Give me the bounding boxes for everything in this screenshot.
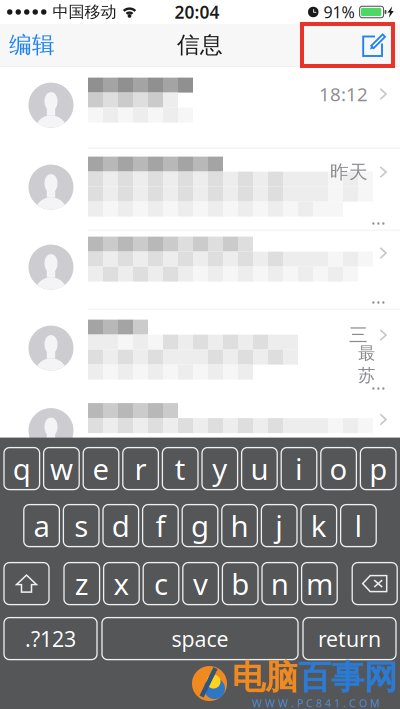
staticText: 18:12 xyxy=(319,82,368,106)
button[interactable]: m xyxy=(302,563,337,605)
staticText: r xyxy=(135,449,147,488)
staticText: W W W . P C 8 4 1 . C O M xyxy=(252,696,380,709)
button[interactable]: k xyxy=(301,505,337,547)
button[interactable]: x xyxy=(104,563,139,605)
staticText: space xyxy=(171,624,228,653)
button[interactable] xyxy=(0,231,400,310)
staticText: 中国移动 xyxy=(52,2,116,22)
staticText: s xyxy=(74,506,88,545)
button[interactable]: New Message xyxy=(350,24,400,66)
button[interactable]: o xyxy=(321,448,356,490)
button[interactable]: 编辑 xyxy=(0,24,65,66)
button[interactable]: 昨天 xyxy=(0,149,400,231)
staticText: a xyxy=(34,506,50,545)
button[interactable]: Delete xyxy=(352,563,397,605)
staticText: h xyxy=(231,506,249,545)
button[interactable]: return xyxy=(303,618,396,660)
button[interactable]: d xyxy=(103,505,139,547)
button[interactable]: Shift xyxy=(4,563,49,605)
staticText: 三 xyxy=(349,324,368,346)
staticText: n xyxy=(271,564,289,603)
button[interactable]: 18:12 xyxy=(0,67,400,149)
staticText: ... xyxy=(371,207,386,230)
button[interactable]: a xyxy=(24,505,59,547)
staticText: 20:04 xyxy=(174,0,219,23)
staticText: p xyxy=(369,449,387,488)
button[interactable]: t xyxy=(162,448,198,490)
button[interactable]: i xyxy=(281,448,317,490)
button[interactable]: space xyxy=(102,618,298,660)
staticText: m xyxy=(306,564,333,603)
staticText: return xyxy=(318,624,381,653)
staticText: l xyxy=(354,506,362,545)
staticText: 91% xyxy=(323,1,354,23)
button[interactable]: c xyxy=(143,563,179,605)
button[interactable]: e xyxy=(83,448,119,490)
staticText: 昨天 xyxy=(330,161,368,183)
button[interactable]: v xyxy=(183,563,218,605)
button[interactable] xyxy=(0,396,400,438)
staticText: g xyxy=(191,506,209,545)
button[interactable]: j xyxy=(261,505,297,547)
staticText: y xyxy=(212,449,227,488)
button[interactable]: f xyxy=(143,505,178,547)
staticText: i xyxy=(295,449,303,488)
staticText: 百事网 xyxy=(298,657,397,698)
staticText: e xyxy=(92,449,109,488)
staticText: 信息 xyxy=(177,31,223,59)
button[interactable]: 三 xyxy=(0,310,400,396)
staticText: q xyxy=(13,449,31,488)
staticText: u xyxy=(250,449,268,488)
staticText: j xyxy=(275,506,283,545)
button[interactable]: r xyxy=(123,448,158,490)
staticText: x xyxy=(113,564,129,603)
staticText: o xyxy=(330,449,348,488)
staticText: .?123 xyxy=(25,624,76,653)
staticText: 最 xyxy=(358,343,375,364)
button[interactable]: u xyxy=(242,448,277,490)
staticText: t xyxy=(175,449,186,488)
button[interactable]: b xyxy=(222,563,258,605)
button[interactable]: g xyxy=(182,505,218,547)
button[interactable]: z xyxy=(64,563,100,605)
staticText: v xyxy=(193,564,208,603)
staticText: z xyxy=(75,564,89,603)
staticText: c xyxy=(154,564,168,603)
button[interactable]: y xyxy=(202,448,238,490)
button[interactable]: q xyxy=(4,448,40,490)
staticText: 苏 xyxy=(358,365,375,386)
staticText: 编辑 xyxy=(9,31,55,59)
staticText: w xyxy=(50,449,73,488)
button[interactable]: p xyxy=(360,448,396,490)
staticText: f xyxy=(155,506,165,545)
staticText: d xyxy=(112,506,130,545)
button[interactable]: h xyxy=(222,505,257,547)
button[interactable]: s xyxy=(63,505,99,547)
button[interactable]: l xyxy=(341,505,376,547)
staticText: 电脑 xyxy=(232,657,298,698)
staticText: ... xyxy=(371,372,386,395)
staticText: ... xyxy=(371,286,386,309)
button[interactable]: n xyxy=(262,563,298,605)
button[interactable]: w xyxy=(44,448,79,490)
staticText: k xyxy=(311,506,327,545)
staticText: b xyxy=(231,564,249,603)
button[interactable]: .?123 xyxy=(4,618,97,660)
